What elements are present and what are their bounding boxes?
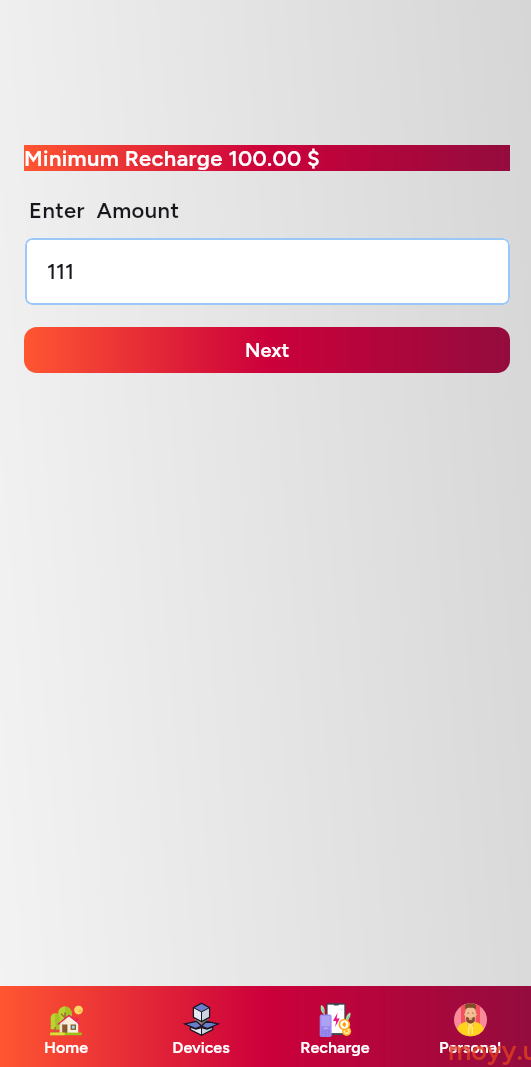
button[interactable]: Next [24,327,510,373]
staticText: Home [44,1038,88,1057]
staticText: Next [245,338,290,362]
button[interactable]: Devices [141,986,261,1067]
button[interactable]: Recharge [275,986,395,1067]
staticText: Personal [439,1038,501,1057]
staticText: moyy.us [448,1034,531,1066]
staticText: Enter Amount [29,197,180,223]
staticText: Recharge [300,1038,370,1057]
staticText: Minimum Recharge 100.00 $ [24,145,320,171]
button[interactable]: Personal [410,986,530,1067]
staticText: 111 [47,259,75,285]
staticText: Devices [172,1038,230,1057]
button[interactable]: 111 [25,238,510,305]
button[interactable]: Home [6,986,126,1067]
